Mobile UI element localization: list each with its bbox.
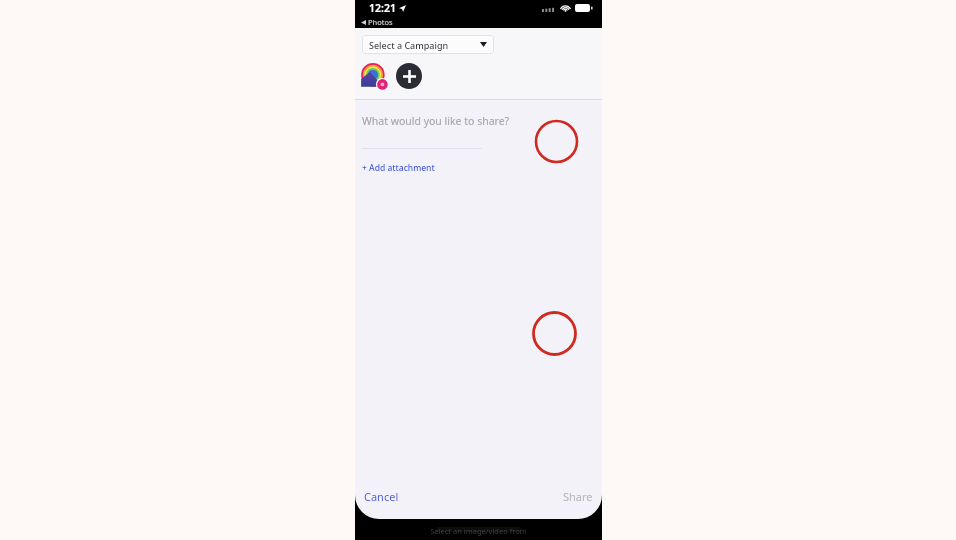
- staticText: Select an image/video from: [430, 526, 527, 536]
- staticText: Select a Campaign: [369, 39, 449, 51]
- button[interactable]: + Add attachment: [362, 162, 435, 174]
- staticText: What would you like to share?: [362, 114, 510, 128]
- staticText: + Add attachment: [362, 162, 435, 174]
- staticText: Photos: [368, 17, 393, 27]
- button[interactable]: Photos: [360, 17, 394, 27]
- button[interactable]: Cancel: [362, 486, 401, 507]
- staticText: Share: [563, 489, 593, 504]
- button[interactable]: Connected account: [360, 62, 388, 90]
- button[interactable]: What would you like to share?: [362, 114, 602, 128]
- button[interactable]: Share: [561, 486, 595, 507]
- button[interactable]: Select a Campaign: [362, 35, 494, 54]
- staticText: Cancel: [364, 489, 399, 504]
- button[interactable]: Add account: [396, 63, 422, 89]
- staticText: 12:21: [369, 1, 396, 15]
